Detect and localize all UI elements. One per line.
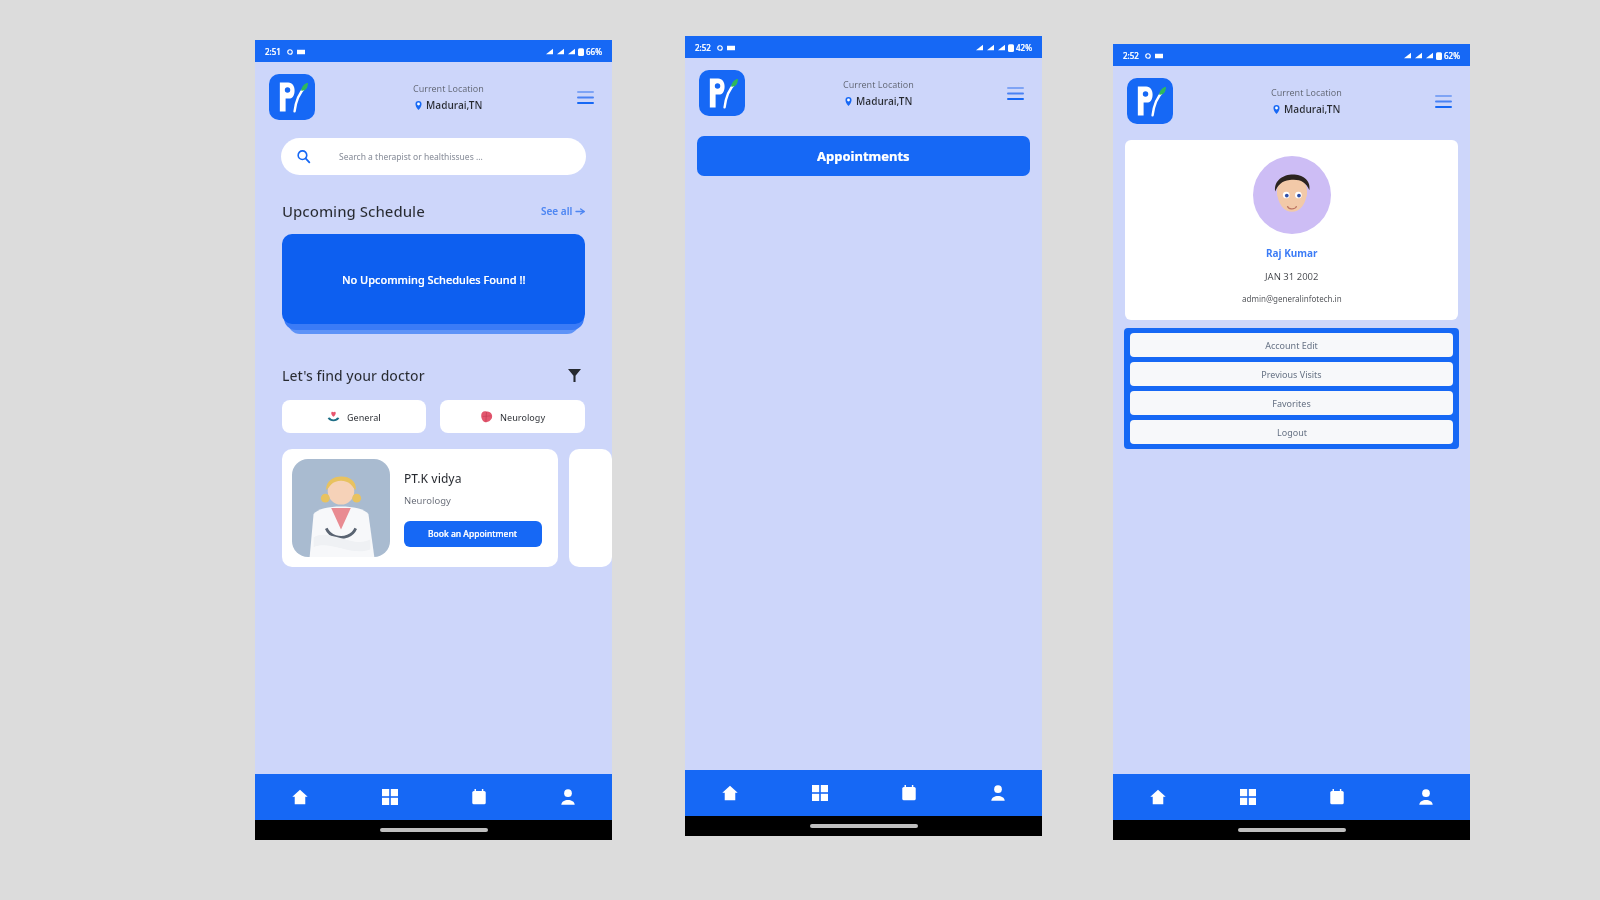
button[interactable]: Search a therapist or healthissues ... (281, 138, 586, 175)
button[interactable]: Home (255, 774, 345, 820)
staticText: Let's find your doctor (282, 366, 425, 385)
button[interactable]: Calendar (434, 774, 523, 820)
button[interactable]: Calendar (1292, 774, 1381, 820)
staticText: Neurology (404, 494, 451, 507)
button[interactable]: Account Edit (1130, 333, 1453, 357)
staticText: admin@generalinfotech.in (1242, 293, 1342, 304)
button[interactable]: See all (541, 204, 585, 218)
staticText: Madurai,TN (426, 98, 483, 112)
button[interactable]: Profile (523, 774, 612, 820)
button[interactable]: Filter (563, 364, 585, 386)
button[interactable]: Logout (1130, 420, 1453, 444)
staticText: JAN 31 2002 (1265, 270, 1319, 283)
button[interactable]: App logo (1127, 78, 1173, 124)
staticText: General (347, 411, 381, 423)
button[interactable] (569, 449, 612, 567)
staticText: Favorites (1272, 397, 1311, 409)
button[interactable]: Categories (1203, 774, 1292, 820)
button[interactable]: Raj Kumar (1125, 156, 1458, 304)
button[interactable]: App logo (269, 74, 315, 120)
button[interactable]: Neurology (440, 400, 585, 433)
staticText: Current Location (1271, 86, 1342, 98)
button[interactable]: Profile (953, 770, 1042, 816)
staticText: Raj Kumar (1266, 246, 1318, 260)
staticText: Search a therapist or healthissues ... (339, 151, 483, 163)
button[interactable]: Previous Visits (1130, 362, 1453, 386)
staticText: 42% (1016, 42, 1032, 53)
staticText: Current Location (413, 82, 484, 94)
button[interactable]: Favorites (1130, 391, 1453, 415)
staticText: 66% (586, 46, 602, 57)
staticText: PT.K vidya (404, 470, 462, 486)
staticText: 2:52 (1123, 50, 1139, 61)
staticText: Madurai,TN (856, 94, 913, 108)
staticText: 62% (1444, 50, 1460, 61)
staticText: 2:52 (695, 42, 711, 53)
staticText: See all (541, 204, 573, 218)
button[interactable]: Calendar (864, 770, 953, 816)
button[interactable]: PT.K vidya (292, 459, 548, 557)
button[interactable]: Menu (1428, 86, 1458, 116)
button[interactable]: Categories (775, 770, 864, 816)
button[interactable]: Book an Appointment (404, 521, 542, 547)
staticText: Appointments (817, 147, 910, 165)
staticText: Madurai,TN (1284, 102, 1341, 116)
button[interactable]: Profile (1381, 774, 1470, 820)
button[interactable]: Categories (345, 774, 434, 820)
staticText: Upcoming Schedule (282, 201, 425, 221)
button[interactable]: Appointments (697, 136, 1030, 176)
button[interactable]: Home (685, 770, 775, 816)
button[interactable]: App logo (699, 70, 745, 116)
staticText: Previous Visits (1261, 368, 1322, 380)
staticText: 2:51 (265, 46, 281, 57)
button[interactable]: Home (1113, 774, 1203, 820)
button[interactable]: General (282, 400, 426, 433)
staticText: Neurology (500, 411, 546, 423)
button[interactable]: No Upcomming Schedules Found !! (282, 234, 585, 324)
button[interactable]: Menu (570, 82, 600, 112)
staticText: Logout (1277, 426, 1307, 438)
staticText: No Upcomming Schedules Found !! (342, 272, 526, 287)
button[interactable]: Menu (1000, 78, 1030, 108)
staticText: Account Edit (1265, 339, 1318, 351)
staticText: Book an Appointment (428, 528, 518, 540)
staticText: Current Location (843, 78, 914, 90)
